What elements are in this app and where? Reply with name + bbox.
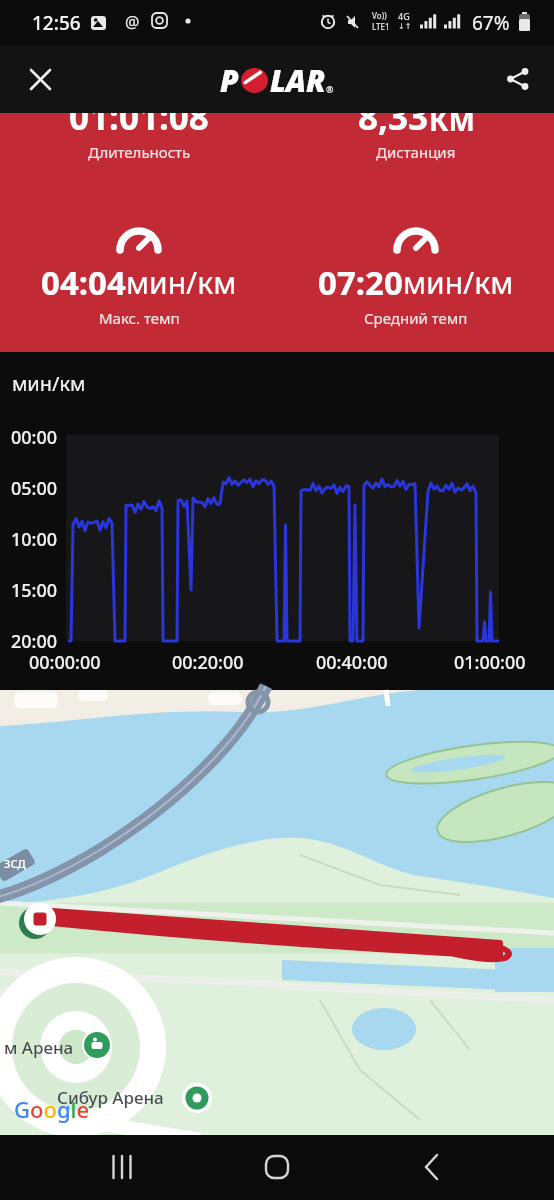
- staticText: 8,33: [358, 113, 429, 141]
- button[interactable]: [255, 1145, 299, 1189]
- staticText: @: [125, 11, 140, 33]
- staticText: 00:00:00: [29, 650, 101, 675]
- staticText: 00:00: [11, 425, 58, 450]
- staticText: 4G: [398, 10, 410, 22]
- staticText: мин/км: [12, 370, 86, 397]
- staticText: 20:00: [11, 629, 58, 654]
- staticText: КМ: [429, 113, 475, 139]
- button[interactable]: [500, 61, 536, 97]
- staticText: LTE1: [372, 21, 390, 32]
- staticText: Google: [14, 1094, 90, 1124]
- staticText: Средний темп: [364, 308, 468, 328]
- staticText: Длительность: [88, 142, 191, 162]
- staticText: м Арена: [4, 1036, 74, 1059]
- staticText: ЗСД: [4, 856, 26, 871]
- staticText: ↓↑: [398, 22, 412, 31]
- staticText: мин/км: [403, 262, 514, 303]
- staticText: Макс. темп: [99, 308, 180, 328]
- button[interactable]: [100, 1145, 144, 1189]
- staticText: Сибур Арена: [57, 1086, 164, 1109]
- staticText: LAR: [270, 60, 326, 101]
- staticText: 01:01:08: [69, 113, 209, 141]
- staticText: мин/км: [126, 262, 237, 303]
- staticText: Дистанция: [376, 142, 456, 162]
- staticText: 07:20: [318, 260, 403, 305]
- staticText: 00:20:00: [172, 650, 244, 675]
- button[interactable]: [22, 61, 58, 97]
- staticText: 10:00: [11, 527, 58, 552]
- staticText: 01:00:00: [454, 650, 526, 675]
- staticText: 15:00: [11, 578, 58, 603]
- staticText: ®: [326, 83, 334, 95]
- staticText: 04:04: [41, 260, 126, 305]
- staticText: 00:40:00: [316, 650, 388, 675]
- staticText: 67%: [472, 10, 510, 36]
- staticText: 12:56: [32, 10, 81, 36]
- staticText: 05:00: [11, 476, 58, 501]
- staticText: Vo)): [372, 10, 387, 21]
- button[interactable]: [410, 1145, 454, 1189]
- staticText: P: [220, 60, 239, 101]
